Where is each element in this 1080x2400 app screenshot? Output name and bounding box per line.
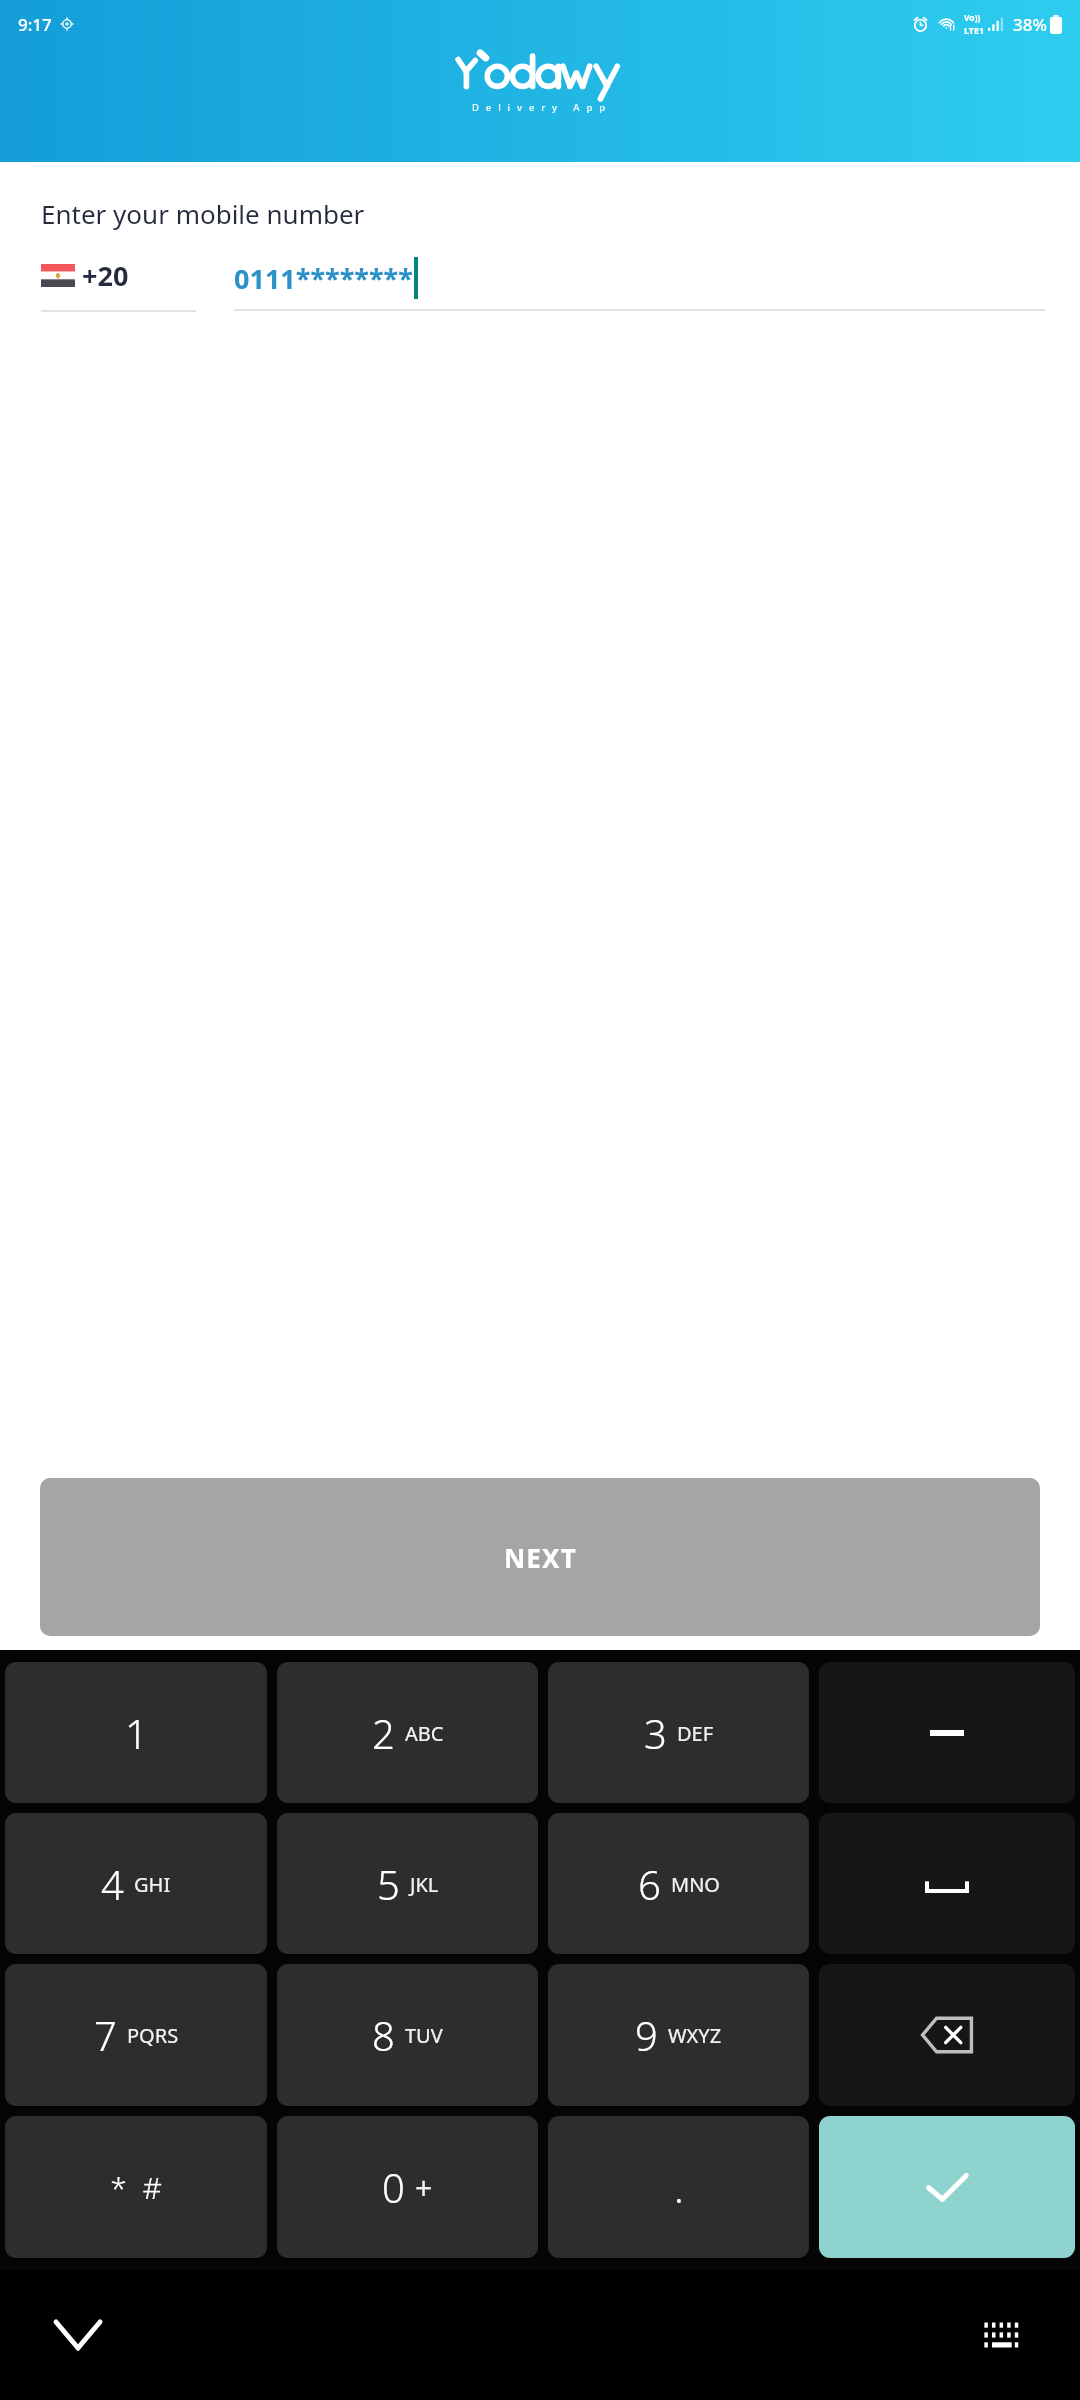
button[interactable]: 5 [277,1813,538,1954]
button[interactable]: NEXT [40,1478,1040,1636]
button[interactable]: Change keyboard [960,2293,1044,2377]
button[interactable]: 4 [5,1813,267,1954]
staticText: ABC [405,1720,444,1747]
staticText: JKL [410,1871,439,1898]
staticText: DEF [677,1720,714,1747]
button[interactable]: 0111******** [234,257,1045,311]
staticText: 0111******** [234,260,413,297]
button[interactable]: 9 [548,1964,809,2106]
button[interactable]: 2 [277,1662,538,1803]
staticText: LTE1 [964,24,985,36]
button[interactable]: Backspace [819,1964,1075,2106]
staticText: Vo)) [964,12,981,24]
button[interactable]: Hide keyboard [36,2293,120,2377]
staticText: 7 [94,2008,117,2062]
staticText: 9:17 [18,13,52,36]
button[interactable]: Enter [819,2116,1075,2258]
staticText: NEXT [504,1540,577,1575]
staticText: MNO [671,1871,720,1898]
button[interactable]: * # [5,2116,267,2258]
staticText: Enter your mobile number [41,196,365,231]
button[interactable]: Dash [819,1662,1075,1803]
button[interactable]: 8 [277,1964,538,2106]
button[interactable]: 3 [548,1662,809,1803]
staticText: PQRS [127,2022,179,2049]
staticText: D e l i v e r y A p p [472,101,608,114]
staticText: WXYZ [668,2022,722,2049]
staticText: + [415,2167,433,2208]
staticText: 5 [377,1857,400,1911]
button[interactable]: 1 [5,1662,267,1803]
staticText: 0 [382,2160,405,2214]
staticText: TUV [405,2022,443,2049]
staticText: 38% [1013,13,1047,36]
staticText: 2 [372,1706,395,1760]
button[interactable]: 7 [5,1964,267,2106]
button[interactable]: . [548,2116,809,2258]
staticText: . [674,2160,684,2214]
staticText: 6 [638,1857,661,1911]
staticText: 8 [372,2008,395,2062]
button[interactable]: 0 [277,2116,538,2258]
staticText: 4 [101,1857,124,1911]
staticText: +20 [82,257,129,294]
button[interactable]: 6 [548,1813,809,1954]
button[interactable]: Space [819,1813,1075,1954]
button[interactable]: +20 [41,257,196,312]
staticText: * # [110,2167,162,2208]
staticText: 1 [125,1706,148,1760]
staticText: 3 [644,1706,667,1760]
staticText: 9 [635,2008,658,2062]
staticText: GHI [134,1871,171,1898]
